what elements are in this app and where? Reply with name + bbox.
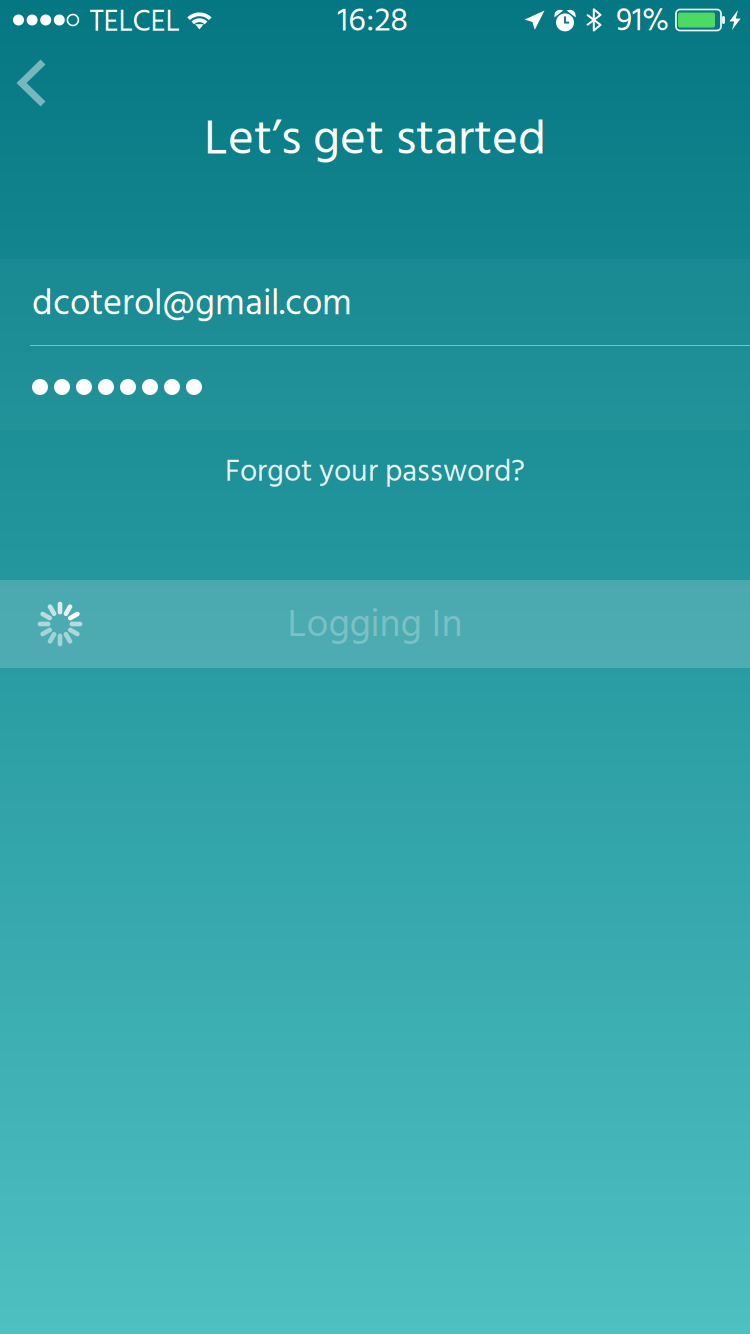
staticText: 91% [616, 0, 669, 48]
staticText: Forgot your password? [225, 448, 525, 498]
button[interactable]: dcoterol@gmail.com [0, 259, 750, 345]
staticText: Logging In [287, 595, 462, 657]
staticText: TELCEL [89, 0, 179, 47]
staticText: 16:28 [337, 0, 408, 49]
button[interactable]: Forgot your password? [0, 430, 750, 516]
button[interactable]: Logging In [0, 580, 750, 668]
staticText: dcoterol@gmail.com [32, 276, 352, 334]
button[interactable]: Back [0, 40, 70, 110]
staticText: Let’s get started [204, 101, 546, 180]
button[interactable] [0, 346, 750, 430]
